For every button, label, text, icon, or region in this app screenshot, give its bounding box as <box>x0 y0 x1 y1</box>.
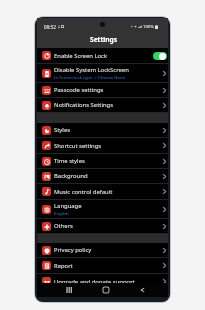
staticText: Notifications Settings <box>54 101 113 109</box>
button[interactable]: Shortcut settings <box>37 138 168 154</box>
staticText: Styles <box>54 126 71 134</box>
staticText: In Screen lock type -> Choose None <box>54 74 126 80</box>
button[interactable]: Music control default <box>37 184 168 200</box>
staticText: Shortcut settings <box>54 142 102 150</box>
button[interactable]: Passcode settings <box>37 83 168 98</box>
staticText: Time styles <box>54 157 85 165</box>
staticText: Passcode settings <box>54 86 104 94</box>
staticText: Report <box>54 262 73 270</box>
button[interactable]: Background <box>37 169 168 184</box>
staticText: Background <box>54 172 88 180</box>
button[interactable]: Back <box>136 284 147 295</box>
staticText: English <box>54 210 69 216</box>
staticText: Disable System LockScreen <box>54 66 129 74</box>
button[interactable]: Report <box>37 258 168 274</box>
staticText: Music control default <box>54 188 113 196</box>
staticText: Settings <box>90 35 118 44</box>
button[interactable]: Others <box>37 219 168 234</box>
button[interactable]: Recents <box>63 284 74 295</box>
button[interactable]: Enable Screen Lock <box>37 48 168 64</box>
staticText: Upgrade and donate support <box>54 278 135 286</box>
staticText: Others <box>54 222 73 230</box>
staticText: Enable Screen Lock <box>54 52 108 60</box>
staticText: 09:52 <box>44 24 56 30</box>
button[interactable]: Language <box>37 200 168 219</box>
button[interactable]: Upgrade and donate support <box>37 274 168 290</box>
staticText: Language <box>54 202 82 210</box>
button[interactable]: Home <box>100 284 111 295</box>
button[interactable]: Notifications Settings <box>37 98 168 113</box>
button[interactable]: Time styles <box>37 154 168 169</box>
staticText: 100% <box>143 24 154 30</box>
button[interactable]: Disable System LockScreen <box>37 64 168 83</box>
button[interactable]: Privacy policy <box>37 243 168 258</box>
button[interactable]: Styles <box>37 123 168 138</box>
staticText: Privacy policy <box>54 246 92 254</box>
button[interactable]: Enable Screen Lock toggle <box>153 52 167 60</box>
